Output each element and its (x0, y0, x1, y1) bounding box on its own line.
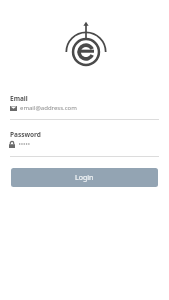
staticText: Email (10, 94, 28, 103)
button[interactable] (10, 128, 159, 157)
staticText: Password (10, 130, 41, 139)
button[interactable]: Login (11, 168, 158, 187)
button[interactable] (10, 92, 159, 120)
staticText: Login (75, 173, 94, 183)
staticText: email@address.com (20, 104, 77, 112)
